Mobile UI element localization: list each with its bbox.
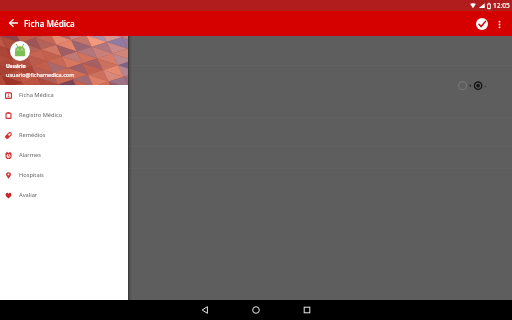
staticText: Hospitais <box>19 171 44 179</box>
button[interactable]: Recent apps <box>292 300 322 320</box>
button[interactable]: Save <box>472 14 492 34</box>
button[interactable]: Remédios <box>0 125 128 145</box>
staticText: Avaliar <box>19 191 38 199</box>
staticText: Alarmes <box>19 151 41 159</box>
button[interactable]: Back <box>190 300 220 320</box>
button[interactable]: Back <box>4 15 22 33</box>
staticText: usuario@fichamedica.com <box>6 71 75 78</box>
button[interactable]: Ficha Médica <box>0 85 128 105</box>
button[interactable]: More options <box>492 17 506 31</box>
staticText: Ficha Médica <box>24 18 75 29</box>
staticText: 12:05 <box>493 1 510 10</box>
staticText: Remédios <box>19 131 46 139</box>
staticText: Usuário <box>6 63 26 70</box>
staticText: Ficha Médica <box>19 91 54 99</box>
button[interactable]: Alarmes <box>0 145 128 165</box>
button[interactable]: Registro Médico <box>0 105 128 125</box>
staticText: Registro Médico <box>19 111 63 119</box>
button[interactable]: Avaliar <box>0 185 128 205</box>
button[interactable]: Hospitais <box>0 165 128 185</box>
button[interactable]: Home <box>241 300 271 320</box>
